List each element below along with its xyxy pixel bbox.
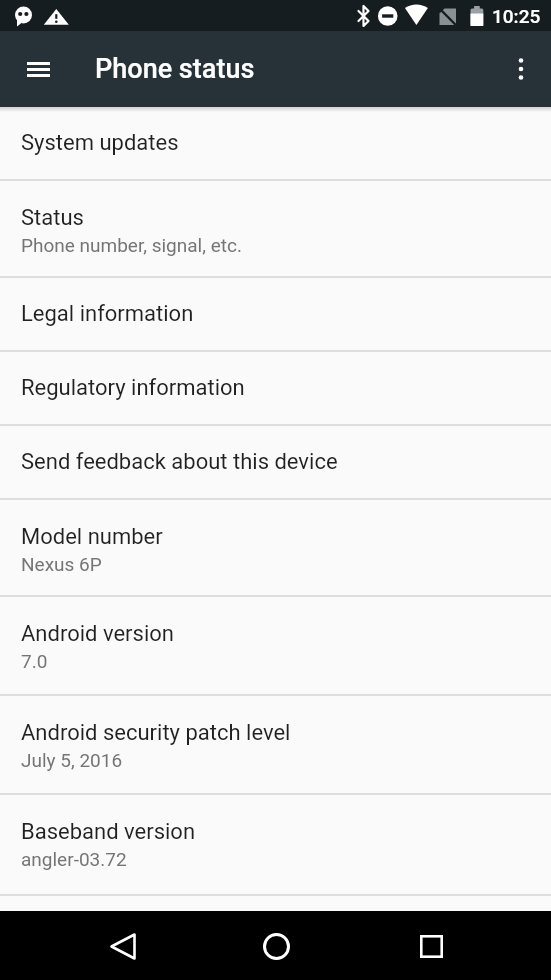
- button[interactable]: Android security patch level: [0, 696, 551, 793]
- staticText: Phone status: [95, 53, 255, 85]
- button[interactable]: System updates: [0, 107, 551, 179]
- staticText: Nexus 6P: [21, 553, 102, 575]
- staticText: Android security patch level: [21, 720, 291, 746]
- staticText: Send feedback about this device: [21, 449, 338, 475]
- staticText: July 5, 2016: [21, 749, 123, 771]
- staticText: 10:25: [492, 5, 541, 27]
- button[interactable]: [491, 31, 551, 107]
- button[interactable]: Status: [0, 181, 551, 276]
- button[interactable]: [248, 918, 304, 974]
- staticText: Baseband version: [21, 819, 196, 845]
- staticText: Status: [21, 205, 84, 231]
- staticText: System updates: [21, 130, 179, 156]
- button[interactable]: Baseband version: [0, 795, 551, 894]
- button[interactable]: [95, 918, 151, 974]
- staticText: angler-03.72: [21, 848, 127, 870]
- staticText: 7.0: [21, 650, 48, 672]
- button[interactable]: Send feedback about this device: [0, 426, 551, 498]
- button[interactable]: Android version: [0, 597, 551, 694]
- staticText: Legal information: [21, 301, 194, 327]
- staticText: Regulatory information: [21, 375, 245, 401]
- staticText: Model number: [21, 524, 163, 550]
- staticText: Android version: [21, 621, 174, 647]
- button[interactable]: Legal information: [0, 278, 551, 350]
- button[interactable]: Model number: [0, 500, 551, 595]
- button[interactable]: [403, 918, 459, 974]
- staticText: Phone number, signal, etc.: [21, 234, 242, 256]
- button[interactable]: Regulatory information: [0, 352, 551, 424]
- button[interactable]: [0, 31, 76, 107]
